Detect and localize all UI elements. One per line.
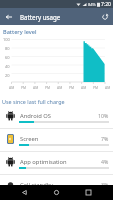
staticText: 60 [5, 55, 10, 60]
staticText: 7% [101, 135, 109, 142]
staticText: Battery level [3, 28, 37, 36]
staticText: PM [69, 85, 75, 90]
staticText: 10% [98, 112, 109, 119]
staticText: AM [33, 85, 39, 90]
button[interactable]: Back [17, 185, 32, 200]
staticText: PM [45, 85, 51, 90]
staticText: AM [105, 85, 111, 90]
staticText: 40 [5, 64, 10, 69]
staticText: PM [93, 85, 99, 90]
staticText: Battery usage [20, 13, 61, 21]
staticText: AM [81, 85, 87, 90]
staticText: App optimisation [20, 158, 67, 166]
staticText: 20 [5, 73, 10, 78]
staticText: AM [57, 85, 63, 90]
button[interactable]: Refresh [96, 8, 113, 25]
button[interactable]: Back [0, 8, 17, 25]
button[interactable]: Screen [0, 129, 113, 152]
button[interactable]: Home [49, 185, 64, 200]
button[interactable]: Recent apps [81, 185, 96, 200]
button[interactable]: App optimisation [0, 152, 113, 175]
button[interactable]: Use since last full charge [2, 98, 65, 105]
staticText: Cell standby [20, 181, 54, 189]
staticText: 100 [3, 37, 10, 42]
staticText: 7:20 [101, 1, 111, 8]
staticText: 84% [88, 2, 96, 7]
staticText: AM [9, 85, 15, 90]
staticText: 3% [101, 181, 109, 188]
staticText: Screen [20, 135, 39, 143]
staticText: 4% [101, 158, 109, 165]
staticText: Android OS [20, 112, 51, 120]
button[interactable]: Android OS [0, 106, 113, 129]
staticText: PM [21, 85, 27, 90]
staticText: 80 [5, 46, 10, 51]
button[interactable]: Cell standby [0, 175, 113, 198]
